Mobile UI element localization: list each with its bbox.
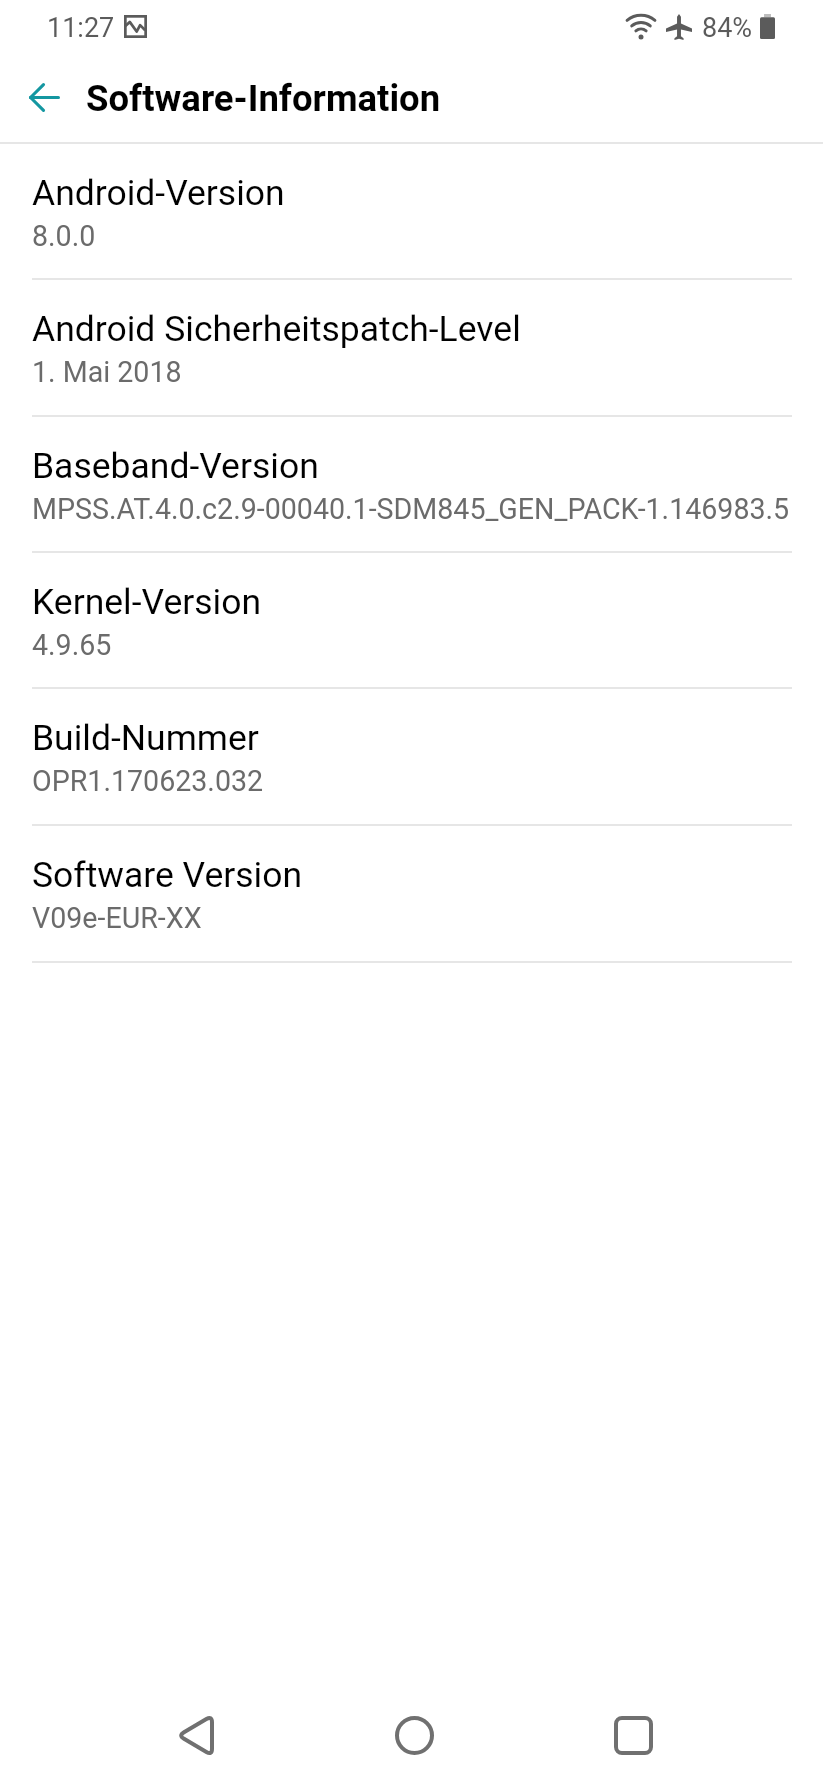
button[interactable]: Back <box>141 1687 251 1783</box>
staticText: V09e-EUR-XX <box>32 901 202 935</box>
button[interactable]: Home <box>359 1687 469 1783</box>
button[interactable]: Android Sicherheitspatch-Level <box>0 280 823 417</box>
staticText: Android Sicherheitspatch-Level <box>32 308 521 350</box>
staticText: 4.9.65 <box>32 628 112 662</box>
staticText: 8.0.0 <box>32 219 96 253</box>
staticText: Software-Information <box>86 77 441 120</box>
staticText: 11:27 <box>47 12 115 44</box>
button[interactable]: Android-Version <box>0 144 823 280</box>
staticText: 1. Mai 2018 <box>32 355 182 389</box>
staticText: OPR1.170623.032 <box>32 764 264 798</box>
staticText: Baseband-Version <box>32 445 319 487</box>
staticText: Build-Nummer <box>32 717 259 759</box>
button[interactable]: Baseband-Version <box>0 417 823 553</box>
button[interactable]: Recent apps <box>578 1687 688 1783</box>
button[interactable]: Build-Nummer <box>0 689 823 826</box>
button[interactable]: Kernel-Version <box>0 553 823 689</box>
staticText: Android-Version <box>32 172 285 214</box>
staticText: Software Version <box>32 854 303 896</box>
staticText: MPSS.AT.4.0.c2.9-00040.1-SDM845_GEN_PACK… <box>32 492 790 526</box>
button[interactable]: Software Version <box>0 826 823 963</box>
button[interactable]: Back <box>0 56 86 142</box>
staticText: 84% <box>702 12 753 44</box>
staticText: Kernel-Version <box>32 581 262 623</box>
